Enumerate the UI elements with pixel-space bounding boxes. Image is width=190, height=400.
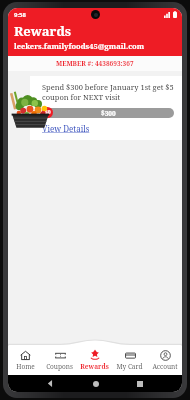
staticText: Home	[16, 362, 35, 371]
staticText: Rewards	[80, 362, 109, 371]
button[interactable]: Rewards	[77, 348, 112, 372]
staticText: MEMBER #: 4438693:367	[56, 59, 134, 68]
button[interactable]: Account	[147, 348, 182, 372]
staticText: $300	[101, 109, 116, 118]
staticText: My Card	[116, 362, 143, 371]
button[interactable]: Spend $300 before January 1st get $5 cou…	[30, 76, 182, 140]
button[interactable]: Coupons	[42, 348, 77, 372]
staticText: Rewards	[14, 22, 72, 40]
button[interactable]: Back	[47, 380, 54, 387]
staticText: $0	[45, 109, 51, 116]
button[interactable]: Home	[93, 381, 99, 387]
button[interactable]: My Card	[112, 348, 147, 372]
staticText: 9:58	[14, 11, 26, 19]
staticText: Coupons	[46, 362, 73, 371]
staticText: Account	[152, 362, 178, 371]
staticText: leekers.familyfoods45@gmail.com	[14, 41, 145, 51]
button[interactable]: Home	[8, 348, 42, 372]
button[interactable]: View Details	[42, 123, 90, 134]
staticText: Spend $300 before January 1st get $5 cou…	[42, 82, 174, 102]
